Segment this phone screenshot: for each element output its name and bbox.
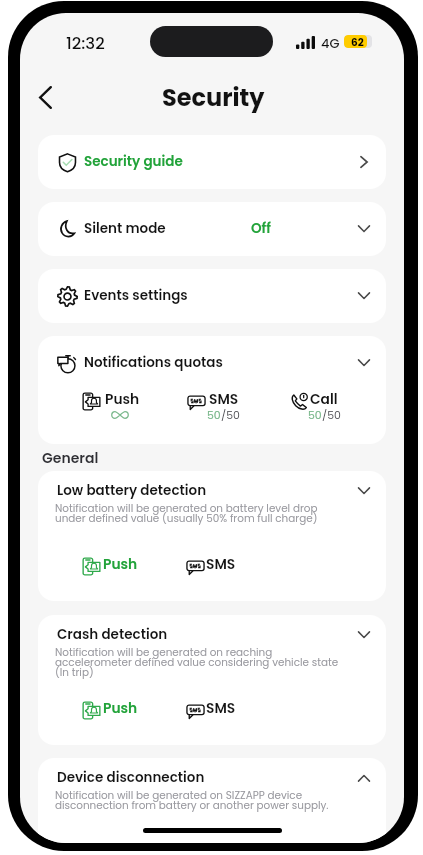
button[interactable]: Events settings	[38, 269, 386, 323]
staticText: SMS	[206, 699, 236, 718]
staticText: Call	[310, 390, 338, 409]
staticText: 50	[207, 408, 221, 423]
staticText: Low battery detection	[57, 481, 207, 500]
staticText: Off	[251, 219, 271, 238]
staticText: Notification will be generated on reachi…	[55, 645, 339, 680]
staticText: Push	[103, 699, 138, 718]
staticText: /50	[221, 408, 240, 423]
button[interactable]: Device disconnection	[38, 758, 386, 843]
button[interactable]: Silent mode	[38, 202, 386, 256]
staticText: Silent mode	[84, 219, 166, 238]
button[interactable]: Notifications quotas	[38, 336, 386, 444]
staticText: SMS	[209, 390, 239, 409]
staticText: 4G	[321, 34, 340, 52]
staticText: Notifications quotas	[84, 353, 223, 372]
staticText: 62	[351, 35, 364, 48]
staticText: Security	[162, 81, 265, 115]
staticText: Security guide	[84, 152, 183, 171]
staticText: Device disconnection	[57, 768, 205, 787]
button[interactable]: Low battery detection	[38, 471, 386, 601]
staticText: SMS	[206, 555, 236, 574]
staticText: /50	[322, 408, 341, 423]
staticText: Notification will be generated on batter…	[55, 501, 318, 526]
staticText: Events settings	[84, 286, 188, 305]
button[interactable]: Security guide	[38, 135, 386, 189]
button[interactable]: Crash detection	[38, 615, 386, 745]
staticText: Push	[105, 390, 140, 409]
staticText: Notification will be generated on SIZZAP…	[55, 788, 329, 813]
staticText: General	[42, 448, 99, 468]
staticText: 50	[308, 408, 322, 423]
staticText: 12:32	[66, 32, 105, 55]
staticText: Crash detection	[57, 625, 168, 644]
staticText: Push	[103, 555, 138, 574]
button[interactable]: Back	[25, 77, 65, 117]
